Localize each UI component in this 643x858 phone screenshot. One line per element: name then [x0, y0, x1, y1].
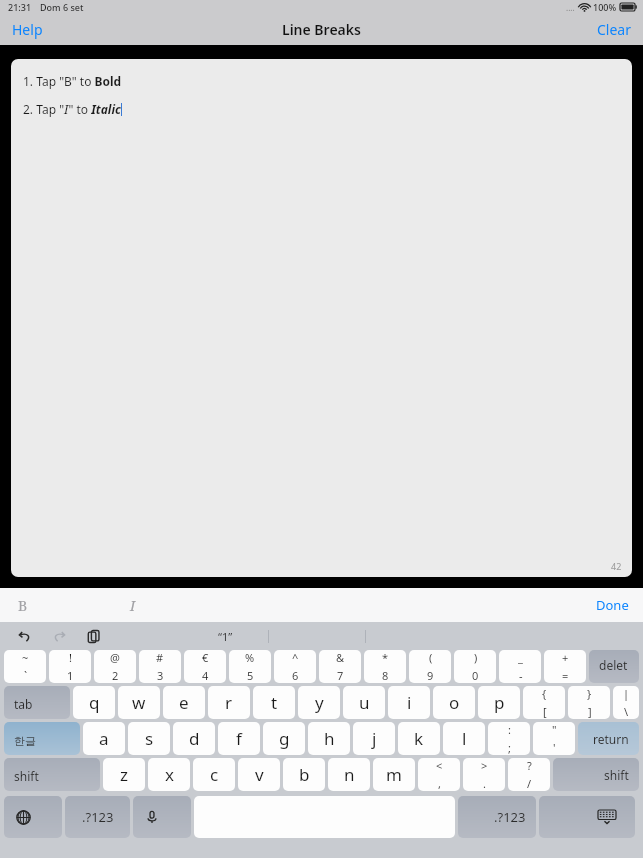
button[interactable]: @ — [94, 650, 136, 683]
button[interactable]: € — [184, 650, 226, 683]
button[interactable]: } — [568, 686, 610, 719]
button[interactable]: v — [238, 758, 280, 791]
button[interactable]: Italic — [124, 592, 142, 619]
staticText: 42 — [611, 560, 622, 572]
button[interactable]: j — [353, 722, 395, 755]
button[interactable]: b — [283, 758, 325, 791]
button[interactable]: Redo — [46, 623, 72, 649]
staticText: . — [483, 776, 486, 791]
button[interactable]: u — [343, 686, 385, 719]
staticText: " — [552, 722, 557, 737]
staticText: g — [279, 727, 290, 750]
button[interactable]: s — [128, 722, 170, 755]
button[interactable]: d — [173, 722, 215, 755]
button[interactable]: t — [253, 686, 295, 719]
button[interactable]: Bold — [12, 592, 34, 619]
button[interactable]: ^ — [274, 650, 316, 683]
button[interactable]: ) — [454, 650, 496, 683]
staticText: ( — [429, 650, 433, 665]
button[interactable]: 1. Tap "B" to Bold — [11, 59, 632, 577]
button[interactable]: l — [443, 722, 485, 755]
button[interactable]: p — [478, 686, 520, 719]
staticText: ; — [508, 740, 511, 755]
button[interactable]: Change keyboard — [4, 796, 62, 838]
staticText: Done — [596, 596, 629, 614]
staticText: € — [202, 650, 209, 665]
button[interactable]: shift — [4, 758, 100, 791]
staticText: i — [407, 691, 412, 714]
button[interactable]: .?123 — [458, 796, 536, 838]
staticText: p — [494, 691, 505, 714]
staticText: / — [527, 776, 532, 791]
staticText: [ — [543, 704, 547, 719]
button[interactable]: tab — [4, 686, 70, 719]
button[interactable]: o — [433, 686, 475, 719]
button[interactable]: 한글 — [4, 722, 80, 755]
staticText: 3 — [157, 668, 164, 683]
button[interactable]: " — [533, 722, 575, 755]
button[interactable]: Done — [582, 591, 643, 619]
button[interactable]: Clear — [585, 15, 643, 44]
button[interactable]: _ — [499, 650, 541, 683]
staticText: 100% — [593, 1, 617, 13]
button[interactable]: e — [163, 686, 205, 719]
staticText: ! — [69, 650, 72, 665]
button[interactable]: shift — [553, 758, 639, 791]
button[interactable]: < — [418, 758, 460, 791]
button[interactable]: Hide keyboard — [539, 796, 635, 838]
button[interactable]: q — [73, 686, 115, 719]
staticText: > — [481, 758, 488, 773]
staticText: w — [132, 691, 146, 714]
staticText: r — [225, 691, 233, 714]
button[interactable]: c — [193, 758, 235, 791]
button[interactable]: x — [148, 758, 190, 791]
button[interactable]: Dictation — [133, 796, 191, 838]
button[interactable]: m — [373, 758, 415, 791]
button[interactable]: a — [83, 722, 125, 755]
button[interactable]: return — [578, 722, 639, 755]
button[interactable]: h — [308, 722, 350, 755]
button[interactable]: + — [544, 650, 586, 683]
button[interactable]: ( — [409, 650, 451, 683]
button[interactable]: ? — [508, 758, 550, 791]
button[interactable]: # — [139, 650, 181, 683]
button[interactable]: ~ — [4, 650, 46, 683]
staticText: l — [462, 727, 467, 750]
button[interactable]: { — [523, 686, 565, 719]
staticText: Line Breaks — [282, 20, 361, 39]
button[interactable]: f — [218, 722, 260, 755]
staticText: < — [436, 758, 443, 773]
staticText: # — [156, 650, 164, 665]
staticText: I — [130, 596, 136, 615]
button[interactable]: Help — [0, 15, 55, 44]
staticText: q — [89, 691, 100, 714]
staticText: u — [359, 691, 370, 714]
button[interactable]: w — [118, 686, 160, 719]
button[interactable]: r — [208, 686, 250, 719]
button[interactable]: * — [364, 650, 406, 683]
staticText: ~ — [22, 650, 29, 665]
button[interactable]: delete — [589, 650, 639, 683]
staticText: 5 — [247, 668, 254, 683]
button[interactable]: k — [398, 722, 440, 755]
button[interactable]: | — [613, 686, 639, 719]
button[interactable]: ! — [49, 650, 91, 683]
staticText: 21:31 — [8, 1, 32, 13]
button[interactable]: i — [388, 686, 430, 719]
button[interactable]: & — [319, 650, 361, 683]
staticText: + — [562, 650, 569, 665]
button[interactable]: : — [488, 722, 530, 755]
button[interactable]: y — [298, 686, 340, 719]
button[interactable]: z — [103, 758, 145, 791]
button[interactable]: Paste — [80, 623, 106, 649]
button[interactable]: % — [229, 650, 271, 683]
button[interactable]: n — [328, 758, 370, 791]
staticText: j — [372, 727, 377, 750]
button[interactable]: g — [263, 722, 305, 755]
staticText: & — [336, 650, 345, 665]
staticText: t — [271, 691, 278, 714]
button[interactable]: > — [463, 758, 505, 791]
button[interactable]: .?123 — [65, 796, 130, 838]
button[interactable]: Undo — [12, 623, 38, 649]
